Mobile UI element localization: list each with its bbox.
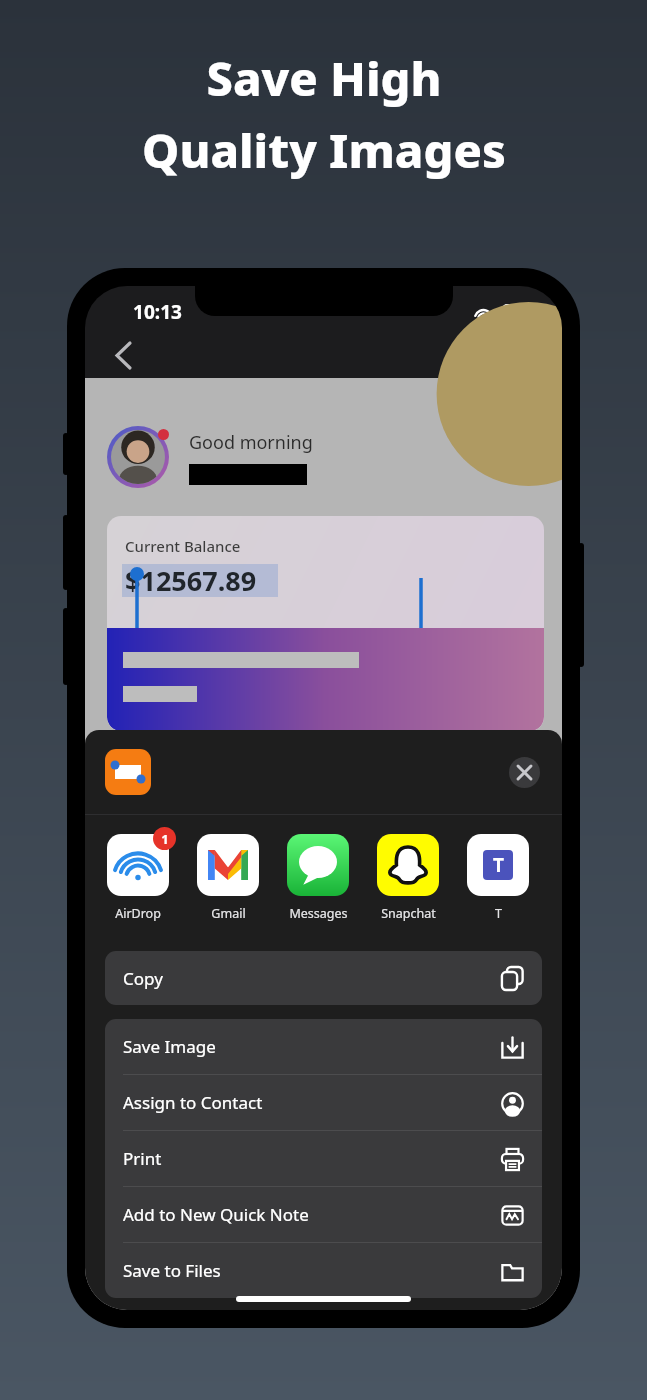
staticText: Quality Images [142, 118, 506, 182]
staticText: Copy [123, 967, 163, 990]
staticText: 10:13 [133, 299, 182, 325]
button[interactable]: Save to Files [105, 1243, 542, 1298]
button[interactable]: Save Image [105, 1019, 542, 1074]
staticText: AirDrop [115, 905, 161, 922]
button[interactable]: Gmail [195, 834, 261, 922]
button[interactable]: T [465, 834, 531, 922]
staticText: Current Balance [125, 536, 241, 556]
staticText: 1 [161, 830, 169, 848]
staticText: Assign to Contact [123, 1091, 263, 1114]
button[interactable]: Copy [105, 951, 542, 1005]
staticText: T [493, 852, 504, 878]
button[interactable]: Shared image preview [105, 749, 151, 795]
staticText: Save to Files [123, 1259, 221, 1282]
staticText: Snapchat [381, 905, 436, 922]
button[interactable]: Print [105, 1131, 542, 1186]
staticText: $12567.89 [125, 562, 257, 599]
button[interactable]: Close [509, 757, 540, 788]
button[interactable]: Assign to Contact [105, 1075, 542, 1130]
staticText: Save Image [123, 1035, 216, 1058]
button[interactable]: Messages [285, 834, 351, 922]
staticText: Add to New Quick Note [123, 1203, 309, 1226]
button[interactable]: Add to New Quick Note [105, 1187, 542, 1242]
staticText: Print [123, 1147, 162, 1170]
staticText: Messages [289, 905, 348, 922]
staticText: Gmail [211, 905, 246, 922]
staticText: Save High [206, 46, 442, 110]
staticText: Good morning [189, 430, 313, 455]
button[interactable]: Back [101, 333, 145, 377]
staticText: T [495, 905, 502, 922]
button[interactable]: 1 [105, 834, 171, 922]
button[interactable]: Snapchat [375, 834, 441, 922]
